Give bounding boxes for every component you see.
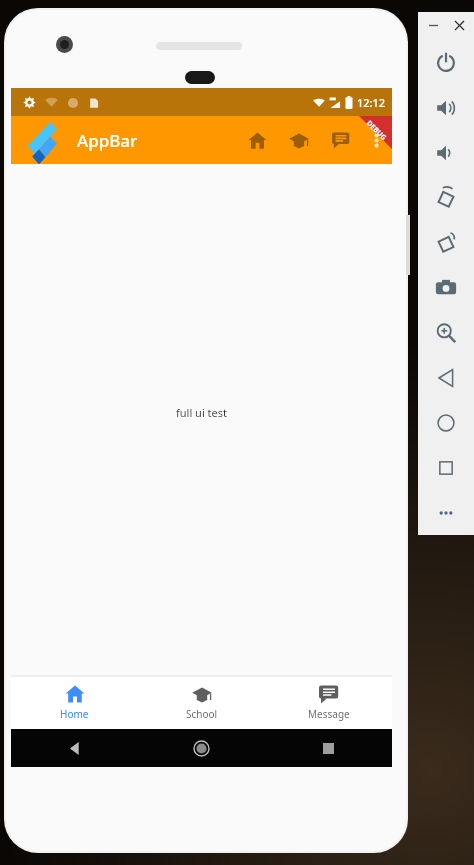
button[interactable]: Volume down <box>418 130 474 175</box>
staticText: School <box>186 707 218 721</box>
button[interactable]: Home <box>418 400 474 445</box>
button[interactable]: Volume up <box>418 85 474 130</box>
staticText: full ui test <box>176 405 228 420</box>
button[interactable]: Back <box>11 729 138 767</box>
button[interactable]: Power <box>418 40 474 85</box>
button[interactable]: More <box>418 490 474 535</box>
staticText: 12:12 <box>357 95 386 110</box>
staticText: AppBar <box>77 129 138 152</box>
button[interactable]: Minimize <box>423 15 443 35</box>
button[interactable]: Screenshot <box>418 265 474 310</box>
button[interactable]: School <box>138 676 265 729</box>
button[interactable]: Back <box>418 355 474 400</box>
button[interactable]: School <box>278 119 320 161</box>
button[interactable]: Message <box>320 119 362 161</box>
button[interactable]: Overview <box>418 445 474 490</box>
button[interactable]: Home <box>11 676 138 729</box>
button[interactable]: Message <box>265 676 392 729</box>
button[interactable]: Home <box>138 729 265 767</box>
staticText: Home <box>60 707 89 721</box>
button[interactable]: Home <box>236 119 278 161</box>
button[interactable]: Rotate right <box>418 220 474 265</box>
button[interactable]: Close <box>449 15 469 35</box>
button[interactable]: More options <box>362 126 390 154</box>
staticText: Message <box>308 707 350 721</box>
button[interactable]: Zoom <box>418 310 474 355</box>
staticText: DEBUG <box>364 119 389 143</box>
button[interactable]: Recent apps <box>265 729 392 767</box>
button[interactable]: Rotate left <box>418 175 474 220</box>
